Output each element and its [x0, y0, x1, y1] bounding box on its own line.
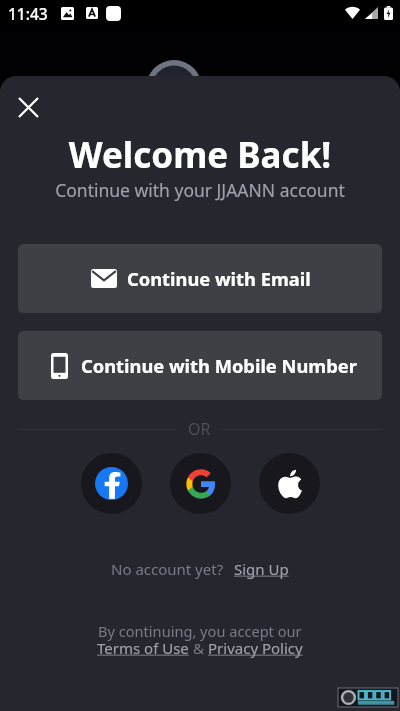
staticText: No account yet? [111, 559, 224, 579]
staticText: Continue with Email [127, 266, 311, 291]
button[interactable]: Close [11, 90, 45, 124]
button[interactable]: Privacy Policy [208, 638, 303, 658]
button[interactable]: Terms of Use [97, 638, 189, 658]
staticText: Continue with Mobile Number [81, 353, 357, 378]
staticText: OR [188, 418, 211, 440]
button[interactable]: Continue with Apple [259, 453, 320, 514]
staticText: & [189, 638, 208, 658]
staticText: Welcome Back! [0, 131, 400, 179]
staticText: Continue with your JJAANN account [0, 178, 400, 202]
button[interactable]: Continue with Facebook [81, 453, 142, 514]
staticText: 11:43 [8, 3, 48, 24]
staticText: By continuing, you accept our [98, 621, 302, 641]
button[interactable]: Continue with Mobile Number [18, 331, 382, 400]
button[interactable]: Continue with Email [18, 244, 382, 313]
button[interactable]: Sign Up [234, 559, 289, 579]
button[interactable]: Continue with Google [170, 453, 231, 514]
